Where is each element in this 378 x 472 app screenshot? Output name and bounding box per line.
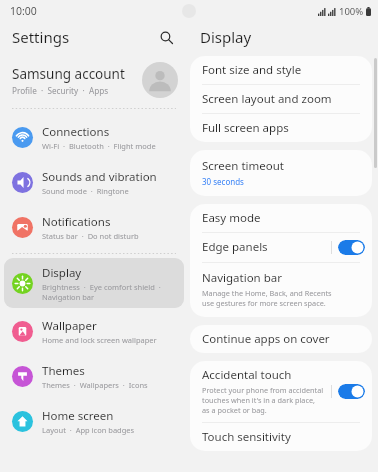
- button[interactable]: Search: [154, 25, 178, 49]
- staticText: 30 seconds: [202, 176, 244, 187]
- staticText: Navigation bar: [202, 270, 282, 286]
- button[interactable]: Navigation bar: [190, 263, 372, 317]
- staticText: Wi-Fi · Bluetooth · Flight mode: [42, 141, 156, 151]
- button[interactable]: Wallpaper: [4, 310, 184, 353]
- staticText: Full screen apps: [202, 120, 289, 136]
- staticText: Screen timeout: [202, 158, 284, 174]
- button[interactable]: Display: [4, 258, 184, 308]
- staticText: Touch sensitivity: [202, 429, 291, 445]
- staticText: Display: [42, 265, 82, 281]
- staticText: Easy mode: [202, 210, 261, 226]
- staticText: Notifications: [42, 214, 111, 230]
- button[interactable]: Full screen apps: [190, 114, 372, 142]
- button[interactable]: Font size and style: [190, 56, 372, 84]
- staticText: Settings: [12, 27, 70, 47]
- button[interactable]: Home screen: [4, 400, 184, 443]
- staticText: Home screen: [42, 408, 114, 424]
- staticText: Accidental touch protection: [202, 367, 331, 383]
- staticText: use gestures for more screen space.: [202, 298, 326, 308]
- button[interactable]: Easy mode: [190, 204, 372, 232]
- staticText: Themes: [42, 363, 85, 379]
- button[interactable]: Connections: [4, 116, 184, 159]
- staticText: Wallpaper: [42, 318, 97, 334]
- staticText: Status bar · Do not disturb: [42, 231, 139, 241]
- staticText: Samsung account: [12, 65, 125, 83]
- button[interactable]: Edge panels: [190, 233, 372, 262]
- staticText: Display: [200, 27, 252, 47]
- staticText: Font size and style: [202, 62, 302, 78]
- staticText: Manage the Home, Back, and Recents butto…: [202, 288, 360, 298]
- button[interactable]: Themes: [4, 355, 184, 398]
- staticText: Protect your phone from accidental: [202, 385, 324, 395]
- staticText: Themes · Wallpapers · Icons: [42, 380, 148, 390]
- staticText: Sounds and vibration: [42, 169, 157, 185]
- button[interactable]: Touch sensitivity: [190, 423, 372, 451]
- button[interactable]: Continue apps on cover screen: [190, 325, 372, 353]
- button[interactable]: Accidental touch protection toggle: [338, 384, 365, 399]
- staticText: Layout · App icon badges: [42, 425, 135, 435]
- staticText: Connections: [42, 124, 110, 140]
- staticText: Navigation bar: [42, 292, 95, 302]
- button[interactable]: Screen layout and zoom: [190, 85, 372, 113]
- staticText: Screen layout and zoom: [202, 91, 332, 107]
- staticText: 10:00: [10, 4, 37, 18]
- button[interactable]: Samsung account: [0, 58, 188, 102]
- staticText: Edge panels: [202, 239, 268, 255]
- button[interactable]: Notifications: [4, 206, 184, 249]
- staticText: Continue apps on cover screen: [202, 331, 360, 347]
- button[interactable]: Edge panels toggle: [338, 240, 365, 255]
- staticText: 100%: [339, 5, 364, 18]
- staticText: touches when it's in a dark place, such: [202, 395, 331, 405]
- staticText: Sound mode · Ringtone: [42, 186, 129, 196]
- button[interactable]: Screen timeout: [190, 150, 372, 196]
- staticText: Home and lock screen wallpaper: [42, 335, 157, 345]
- staticText: Profile · Security · Apps: [12, 85, 109, 96]
- button[interactable]: Accidental touch protection: [190, 361, 372, 422]
- staticText: Brightness · Eye comfort shield ·: [42, 282, 161, 292]
- button[interactable]: Sounds and vibration: [4, 161, 184, 204]
- staticText: as a pocket or bag.: [202, 405, 267, 415]
